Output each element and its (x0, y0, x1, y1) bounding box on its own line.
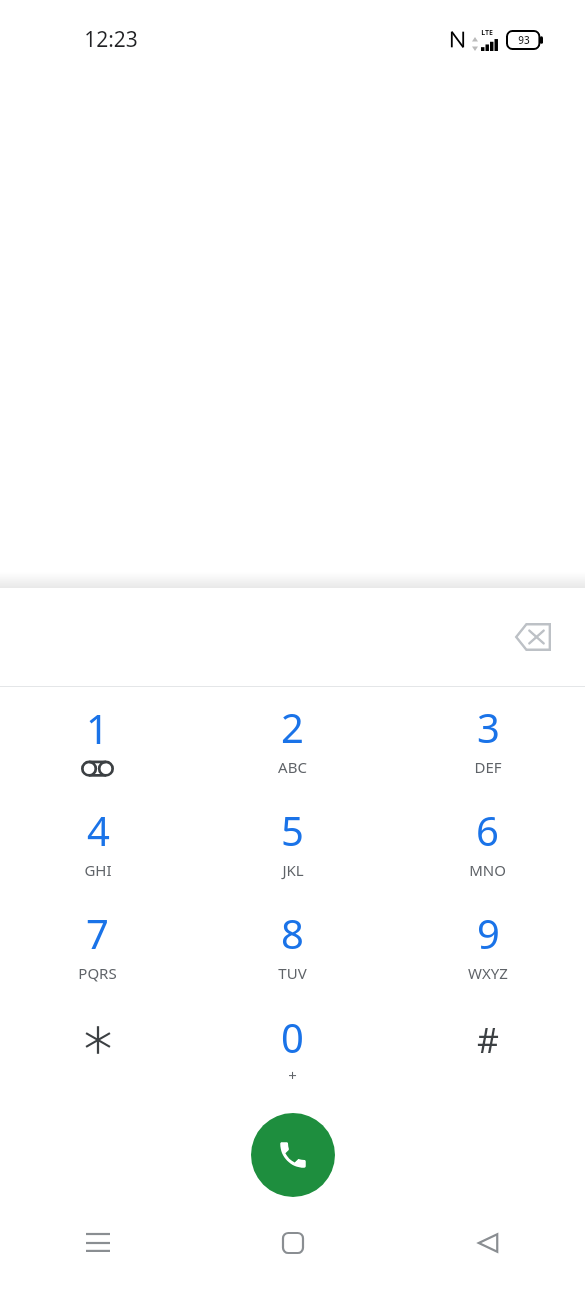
button[interactable]: Backspace (505, 608, 563, 666)
staticText: 1 (86, 701, 109, 755)
staticText: 6 (476, 803, 499, 857)
staticText: LTE (481, 28, 493, 38)
staticText: ABC (278, 757, 307, 777)
button[interactable]: 1 (0, 687, 195, 790)
staticText: DEF (474, 757, 502, 777)
button[interactable]: 2 (195, 687, 390, 790)
staticText: # (477, 1017, 499, 1063)
staticText: 5 (281, 803, 304, 857)
button[interactable]: # (390, 996, 585, 1099)
staticText: 12:23 (84, 25, 138, 54)
button[interactable] (0, 996, 195, 1099)
staticText: 93 (518, 33, 530, 47)
staticText: 4 (87, 803, 110, 857)
staticText: 8 (281, 906, 304, 960)
button[interactable]: Recent apps (66, 1211, 130, 1275)
staticText: TUV (278, 963, 307, 983)
button[interactable]: Back (456, 1211, 520, 1275)
button[interactable]: Call (251, 1113, 335, 1197)
button[interactable]: Home (261, 1211, 325, 1275)
staticText: MNO (469, 860, 506, 880)
button[interactable]: 3 (390, 687, 585, 790)
staticText: GHI (84, 860, 112, 880)
staticText: WXYZ (468, 963, 508, 983)
button[interactable]: 6 (390, 790, 585, 893)
button[interactable]: 0 (195, 996, 390, 1099)
staticText: 3 (477, 700, 500, 754)
staticText: 7 (86, 906, 109, 960)
button[interactable]: 7 (0, 893, 195, 996)
staticText: 2 (281, 700, 304, 754)
button[interactable]: 9 (390, 893, 585, 996)
staticText: 0 (281, 1010, 304, 1064)
staticText: + (288, 1065, 297, 1085)
button[interactable]: 5 (195, 790, 390, 893)
staticText: PQRS (78, 963, 117, 983)
staticText: 9 (477, 906, 500, 960)
button[interactable]: 4 (0, 790, 195, 893)
staticText: JKL (282, 860, 304, 880)
button[interactable]: 8 (195, 893, 390, 996)
